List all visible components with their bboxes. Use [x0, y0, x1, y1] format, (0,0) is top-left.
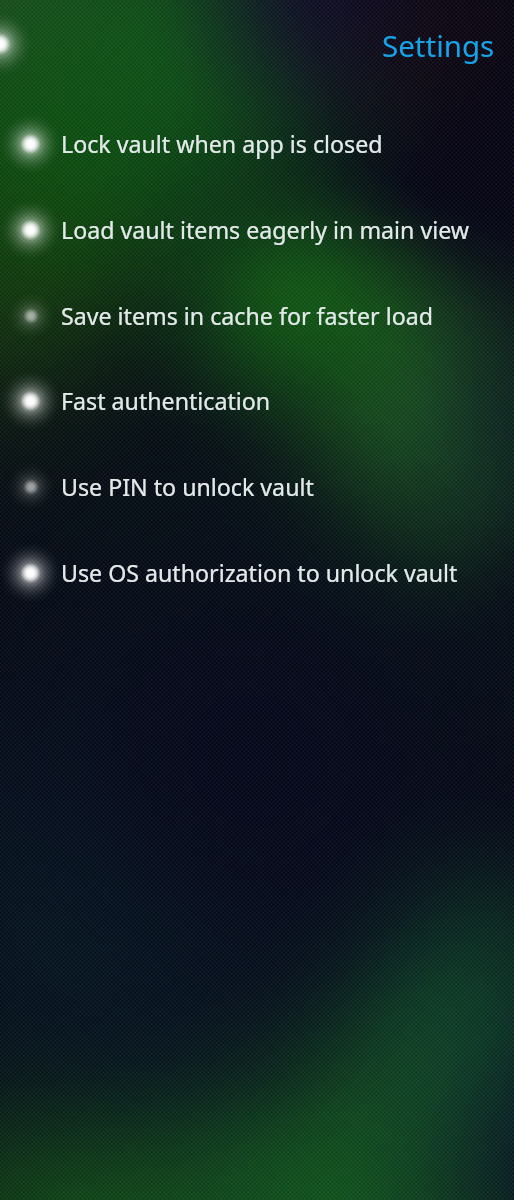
staticText: Lock vault when app is closed [61, 128, 383, 160]
button[interactable]: Use PIN to unlock vault [0, 444, 514, 530]
button[interactable]: Save items in cache for faster load [0, 273, 514, 359]
staticText: Fast authentication [61, 385, 271, 417]
staticText: Settings [382, 25, 495, 65]
staticText: Use OS authorization to unlock vault [61, 557, 458, 589]
button[interactable]: Back [0, 12, 32, 76]
button[interactable]: Load vault items eagerly in main view [0, 187, 514, 273]
button[interactable]: Use OS authorization to unlock vault [0, 530, 514, 616]
staticText: Load vault items eagerly in main view [61, 214, 470, 246]
button[interactable]: Fast authentication [0, 358, 514, 444]
button[interactable]: Lock vault when app is closed [0, 101, 514, 187]
staticText: Use PIN to unlock vault [61, 471, 314, 503]
staticText: Save items in cache for faster load [61, 300, 433, 332]
